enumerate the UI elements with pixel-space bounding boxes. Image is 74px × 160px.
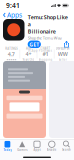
staticText: GET xyxy=(29,41,39,48)
button[interactable]: Arcade xyxy=(44,139,59,153)
staticText: 9:41 xyxy=(6,1,20,10)
staticText: Apps xyxy=(7,11,22,19)
staticText: Billionaire xyxy=(28,28,56,35)
staticText: Seller xyxy=(59,58,67,61)
staticText: CHART xyxy=(40,47,50,50)
staticText: Years Old xyxy=(22,58,34,61)
button[interactable]: Games xyxy=(15,139,30,153)
staticText: Games xyxy=(17,148,27,152)
staticText: 4.7 xyxy=(8,51,15,58)
button[interactable]: Apps xyxy=(30,139,44,153)
button[interactable]: GET xyxy=(28,41,41,48)
staticText: Search xyxy=(62,148,71,151)
button[interactable]: Apps xyxy=(0,10,22,20)
staticText: ★★★★★ xyxy=(6,58,16,61)
staticText: AGE xyxy=(26,47,31,50)
staticText: DEVELOPER xyxy=(56,47,70,50)
button[interactable]: Search xyxy=(59,139,74,153)
staticText: 4+ xyxy=(25,50,31,58)
staticText: WW xyxy=(58,50,68,58)
staticText: Today xyxy=(3,148,11,152)
staticText: Apps xyxy=(33,148,40,151)
staticText: In-App Purchases xyxy=(28,49,52,52)
staticText: Arcade xyxy=(47,148,57,151)
staticText: #1 xyxy=(42,50,48,58)
staticText: RATINGS xyxy=(5,47,17,50)
staticText: Shopping xyxy=(38,58,52,61)
staticText: Temu: Shop Like a xyxy=(28,14,68,28)
staticText: Shop the Temu Way xyxy=(28,35,62,40)
button[interactable]: Share xyxy=(64,41,69,47)
button[interactable]: Today xyxy=(0,139,15,153)
